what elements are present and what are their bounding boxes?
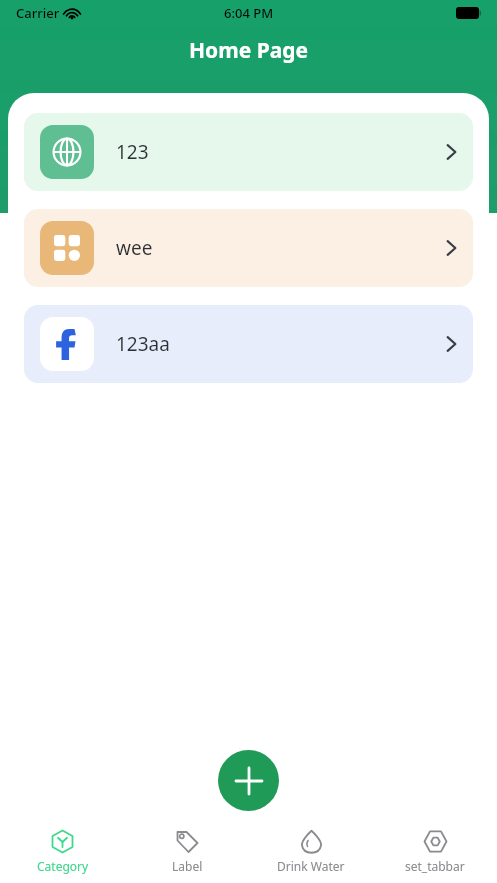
button[interactable]: Category: [0, 820, 125, 883]
staticText: Drink Water: [277, 858, 345, 874]
staticText: 123: [116, 139, 149, 165]
button[interactable]: Drink Water: [249, 820, 373, 883]
staticText: wee: [116, 235, 153, 261]
button[interactable]: set_tabbar: [373, 820, 497, 883]
staticText: 123aa: [116, 331, 170, 357]
staticText: Category: [37, 858, 89, 874]
button[interactable]: Add: [218, 750, 279, 811]
button[interactable]: 123: [24, 113, 473, 191]
staticText: 6:04 PM: [224, 4, 274, 22]
button[interactable]: wee: [24, 209, 473, 287]
button[interactable]: Label: [125, 820, 249, 883]
staticText: Carrier: [16, 4, 60, 22]
staticText: set_tabbar: [405, 858, 465, 874]
staticText: Label: [172, 858, 203, 874]
staticText: Home Page: [189, 36, 309, 65]
button[interactable]: 123aa: [24, 305, 473, 383]
